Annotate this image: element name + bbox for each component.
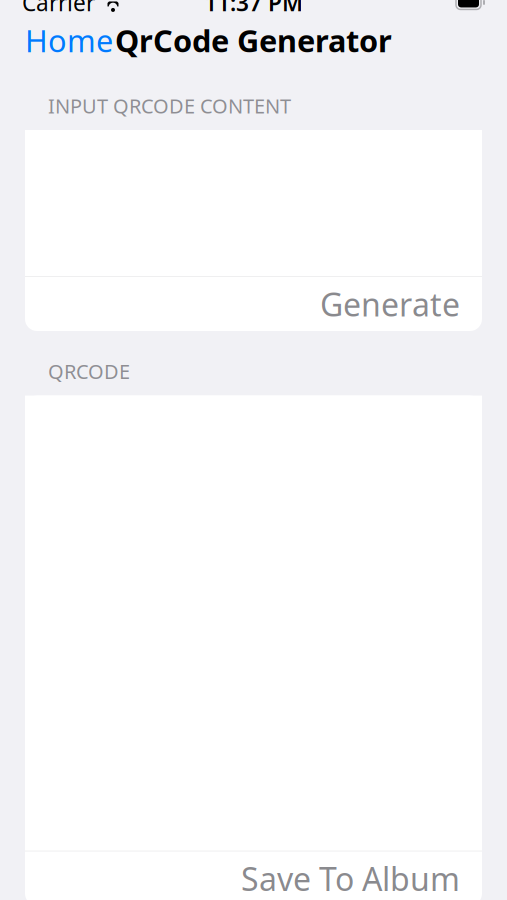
staticText: QRCODE [48,358,130,385]
staticText: Generate [320,283,460,325]
button[interactable]: Save To Album [241,846,482,900]
staticText: INPUT QRCODE CONTENT [48,92,291,119]
staticText: Save To Album [241,857,460,900]
staticText: 11:37 PM [204,0,303,17]
button[interactable]: Generate [320,272,482,336]
button[interactable]: Home [15,14,123,67]
staticText: Home [25,20,113,61]
staticText: Carrier [22,0,95,17]
staticText: QrCode Generator [115,20,392,61]
